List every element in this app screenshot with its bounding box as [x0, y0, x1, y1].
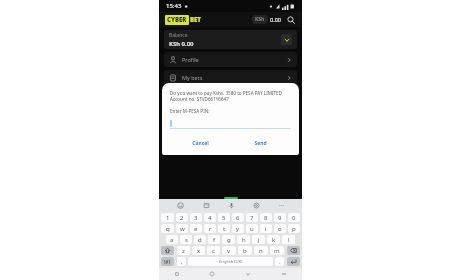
button[interactable]: 6 — [232, 213, 244, 222]
button[interactable]: Enter — [287, 257, 300, 266]
staticText: k — [272, 236, 276, 244]
button[interactable]: Keyboard settings — [244, 199, 269, 212]
staticText: x — [197, 247, 201, 255]
button[interactable]: KSh — [255, 16, 265, 23]
staticText: 8 — [264, 214, 268, 222]
button[interactable]: Expand balance — [281, 34, 292, 45]
button[interactable]: Back — [230, 268, 266, 280]
button[interactable]: b — [238, 246, 252, 255]
staticText: a — [170, 236, 174, 244]
staticText: English (UK) — [219, 259, 243, 265]
staticText: o — [278, 225, 282, 233]
staticText: d — [198, 236, 202, 244]
staticText: 0 — [292, 214, 296, 222]
button[interactable]: Hide keyboard — [266, 268, 302, 280]
button[interactable]: o — [274, 224, 286, 233]
button[interactable]: u — [246, 224, 258, 233]
button[interactable]: i — [260, 224, 272, 233]
button[interactable]: English (UK) — [188, 257, 273, 266]
staticText: 9 — [278, 214, 282, 222]
button[interactable]: Profile — [164, 52, 297, 67]
button[interactable]: , — [177, 257, 186, 266]
button[interactable]: Home — [194, 268, 230, 280]
staticText: Profile — [182, 56, 199, 63]
button[interactable]: t — [218, 224, 230, 233]
button[interactable]: 5 — [218, 213, 230, 222]
staticText: 5 — [222, 214, 226, 222]
button[interactable]: h — [237, 235, 250, 244]
staticText: e — [194, 225, 198, 233]
button[interactable]: Stickers — [193, 199, 219, 212]
staticText: q — [166, 225, 170, 233]
button[interactable]: Balance — [164, 30, 297, 49]
staticText: 7 — [250, 214, 254, 222]
staticText: 4 — [208, 214, 212, 222]
button[interactable]: Send — [230, 137, 291, 150]
button[interactable]: c — [207, 246, 220, 255]
button[interactable]: 2 — [176, 213, 188, 222]
button[interactable]: x — [192, 246, 205, 255]
button[interactable]: 1 — [161, 213, 174, 222]
button[interactable]: Backspace — [287, 246, 300, 255]
button[interactable]: More options — [269, 199, 294, 212]
staticText: 15:43 — [166, 2, 182, 10]
button[interactable]: s — [180, 235, 192, 244]
button[interactable]: 9 — [274, 213, 286, 222]
staticText: n — [259, 247, 263, 255]
button[interactable]: e — [190, 224, 202, 233]
button[interactable]: 0 — [288, 213, 300, 222]
button[interactable]: 8 — [260, 213, 272, 222]
staticText: j — [258, 236, 260, 244]
staticText: z — [182, 247, 185, 255]
button[interactable]: k — [267, 235, 280, 244]
button[interactable]: m — [270, 246, 284, 255]
button[interactable]: v — [222, 246, 236, 255]
staticText: i — [265, 225, 267, 233]
button[interactable]: y — [232, 224, 244, 233]
button[interactable]: n — [254, 246, 268, 255]
button[interactable]: Cancel — [170, 137, 230, 150]
button[interactable]: z — [177, 246, 190, 255]
button[interactable]: p — [288, 224, 300, 233]
button[interactable]: 3 — [190, 213, 202, 222]
staticText: 2 — [180, 214, 184, 222]
button[interactable]: Search — [285, 14, 296, 25]
button[interactable]: g — [222, 235, 235, 244]
button[interactable]: Symbols — [161, 257, 174, 266]
button[interactable]: My bets — [164, 70, 297, 85]
button[interactable]: a — [166, 235, 178, 244]
staticText: CYBER — [167, 16, 187, 24]
staticText: Enter M-PESA PIN: — [170, 108, 210, 114]
button[interactable]: CYBER — [167, 16, 187, 24]
button[interactable]: w — [176, 224, 188, 233]
button[interactable]: d — [194, 235, 206, 244]
button[interactable]: Voice input — [219, 199, 244, 212]
button[interactable]: Emoji — [167, 199, 193, 212]
button[interactable]: l — [282, 235, 295, 244]
staticText: f — [213, 236, 216, 244]
staticText: Cancel — [192, 140, 209, 147]
button[interactable]: q — [161, 224, 174, 233]
button[interactable]: f — [208, 235, 220, 244]
button[interactable]: r — [204, 224, 216, 233]
staticText: r — [209, 225, 212, 233]
staticText: BET — [190, 16, 201, 24]
staticText: Send — [254, 140, 267, 147]
staticText: KSh — [255, 16, 265, 23]
staticText: Balance — [169, 32, 188, 39]
staticText: y — [236, 225, 240, 233]
staticText: 1 — [166, 214, 170, 222]
staticText: t — [223, 225, 226, 233]
staticText: b — [243, 247, 247, 255]
button[interactable]: Recents — [159, 268, 194, 280]
button[interactable]: . — [275, 257, 284, 266]
staticText: p — [292, 225, 296, 233]
staticText: s — [185, 236, 188, 244]
button[interactable]: Shift — [161, 246, 174, 255]
staticText: 0.00 — [270, 16, 281, 23]
button[interactable]: 4 — [204, 213, 216, 222]
button[interactable]: j — [252, 235, 265, 244]
staticText: l — [288, 236, 290, 244]
staticText: . — [279, 258, 281, 266]
button[interactable]: 7 — [246, 213, 258, 222]
